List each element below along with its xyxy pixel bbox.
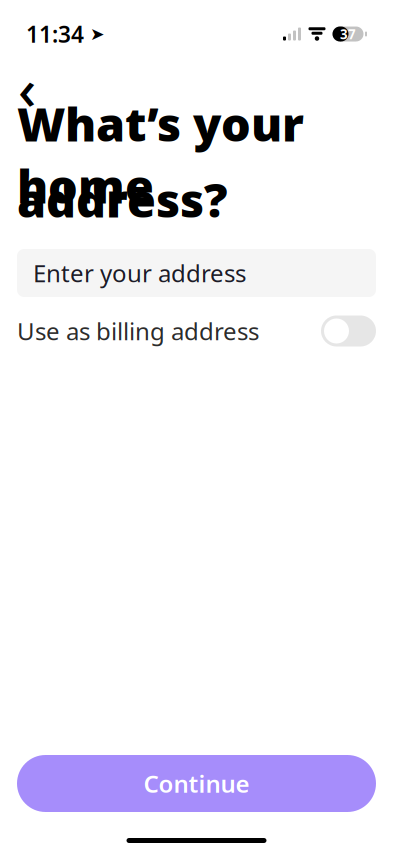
staticText: 11:34 bbox=[26, 19, 84, 49]
button[interactable]: Use as billing address bbox=[17, 309, 376, 353]
staticText: What’s your home bbox=[17, 92, 304, 216]
button[interactable]: Enter your address bbox=[17, 249, 376, 297]
staticText: address? bbox=[17, 168, 228, 230]
staticText: Enter your address bbox=[33, 257, 246, 289]
staticText: 37 bbox=[340, 25, 356, 43]
staticText: ‹ bbox=[18, 51, 36, 125]
staticText: ➤ bbox=[90, 24, 105, 44]
button[interactable]: Back bbox=[5, 66, 49, 110]
staticText: Use as billing address bbox=[17, 315, 259, 347]
staticText: Continue bbox=[143, 768, 249, 799]
button[interactable]: Continue bbox=[17, 755, 376, 812]
